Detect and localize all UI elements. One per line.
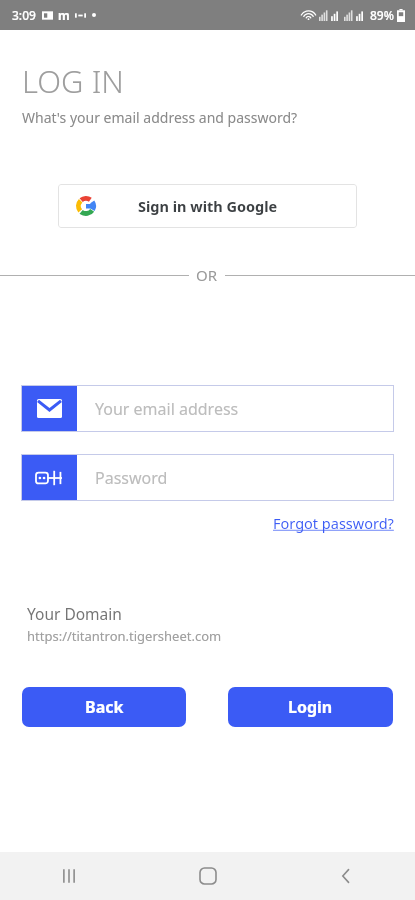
button[interactable]: Recent apps bbox=[45, 852, 93, 900]
staticText: 3:09 bbox=[12, 7, 36, 23]
button[interactable]: Forgot password? bbox=[273, 513, 394, 533]
staticText: Forgot password? bbox=[273, 513, 394, 533]
staticText: 89% bbox=[370, 7, 394, 23]
staticText: Your Domain bbox=[27, 603, 122, 624]
button[interactable]: Email bbox=[21, 385, 394, 432]
button[interactable]: Password bbox=[21, 454, 394, 501]
staticText: OR bbox=[196, 265, 218, 285]
button[interactable]: Login bbox=[228, 687, 393, 727]
button[interactable]: Back bbox=[22, 687, 186, 727]
other: Email bbox=[21, 385, 77, 432]
staticText: Your email address bbox=[95, 398, 239, 420]
staticText: What's your email address and password? bbox=[22, 108, 298, 127]
other: Password bbox=[21, 454, 77, 501]
staticText: Login bbox=[288, 696, 333, 718]
button[interactable]: Sign in with Google bbox=[58, 184, 357, 228]
button[interactable]: Back bbox=[322, 852, 370, 900]
button[interactable]: Home bbox=[184, 852, 232, 900]
staticText: Password bbox=[95, 467, 168, 489]
staticText: Sign in with Google bbox=[138, 196, 278, 216]
staticText: Back bbox=[85, 696, 124, 718]
staticText: m bbox=[58, 7, 70, 23]
staticText: LOG IN bbox=[22, 60, 124, 102]
staticText: https://titantron.tigersheet.com bbox=[27, 627, 222, 645]
